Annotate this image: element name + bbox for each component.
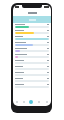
button[interactable] <box>14 47 50 53</box>
button[interactable] <box>14 41 50 47</box>
button[interactable] <box>14 71 50 77</box>
button[interactable] <box>14 53 50 59</box>
button[interactable] <box>14 35 50 41</box>
button[interactable] <box>13 16 51 23</box>
button[interactable]: Tab 1 <box>20 98 27 106</box>
button[interactable] <box>14 65 50 71</box>
button[interactable]: Tab 2 <box>27 98 35 106</box>
button[interactable] <box>14 77 50 83</box>
button[interactable]: Tab 4 <box>43 98 51 106</box>
button[interactable] <box>13 9 51 16</box>
button[interactable]: Tab 3 <box>35 98 43 106</box>
button[interactable] <box>14 83 50 89</box>
button[interactable] <box>14 59 50 65</box>
button[interactable] <box>14 23 50 29</box>
button[interactable]: Tab 0 <box>13 98 20 106</box>
button[interactable] <box>14 29 50 35</box>
